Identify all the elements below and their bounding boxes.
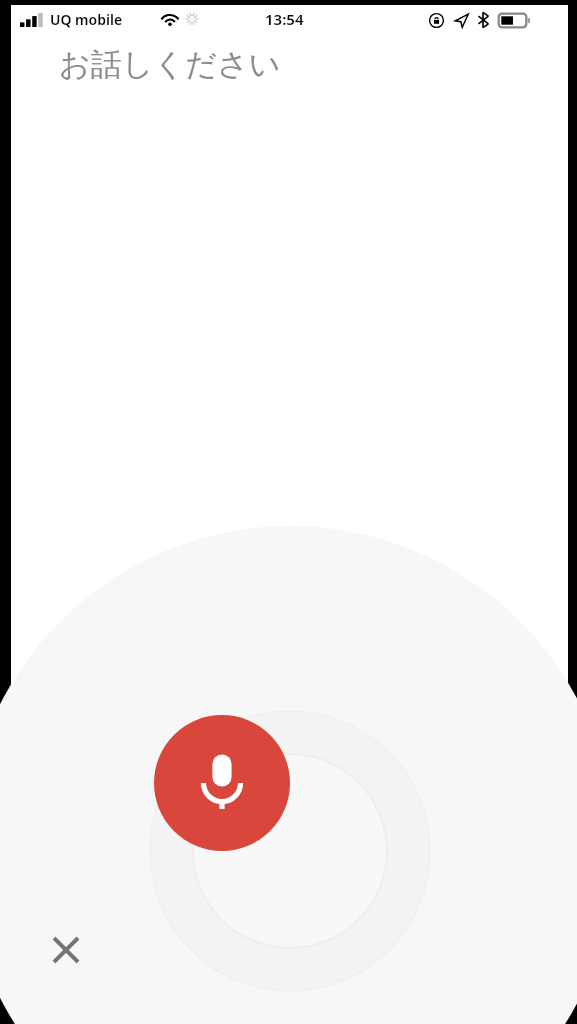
staticText: お話しください — [59, 45, 281, 84]
staticText: UQ mobile — [50, 10, 123, 29]
staticText: 13:54 — [265, 9, 304, 29]
button[interactable]: Microphone, listening — [154, 715, 290, 851]
button[interactable]: Close — [38, 922, 94, 978]
